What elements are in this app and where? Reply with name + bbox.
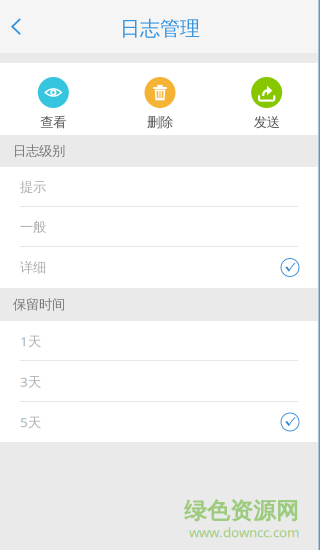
staticText: 删除 <box>147 114 173 130</box>
button[interactable]: 一般 <box>0 207 320 247</box>
staticText: 一般 <box>20 219 46 235</box>
staticText: 发送 <box>254 114 280 130</box>
staticText: 3天 <box>20 373 41 390</box>
staticText: 保留时间 <box>13 296 65 313</box>
staticText: 绿色资源网 <box>184 497 299 525</box>
button[interactable]: 提示 <box>0 167 320 207</box>
button[interactable]: 查看 <box>0 63 107 135</box>
button[interactable]: 5天 <box>0 402 320 442</box>
staticText: www.downcc.com <box>189 523 299 541</box>
button[interactable]: 删除 <box>107 63 213 135</box>
staticText: 日志管理 <box>120 16 200 41</box>
button[interactable]: Back <box>0 4 50 48</box>
staticText: 提示 <box>20 179 46 195</box>
staticText: 5天 <box>20 413 41 431</box>
button[interactable]: 详细 <box>0 247 320 288</box>
button[interactable]: 发送 <box>213 63 320 135</box>
staticText: 1天 <box>20 332 41 350</box>
button[interactable]: 1天 <box>0 321 320 361</box>
staticText: 查看 <box>40 114 66 130</box>
staticText: 日志级别 <box>13 143 65 159</box>
button[interactable]: 3天 <box>0 361 320 402</box>
staticText: 详细 <box>20 259 46 276</box>
